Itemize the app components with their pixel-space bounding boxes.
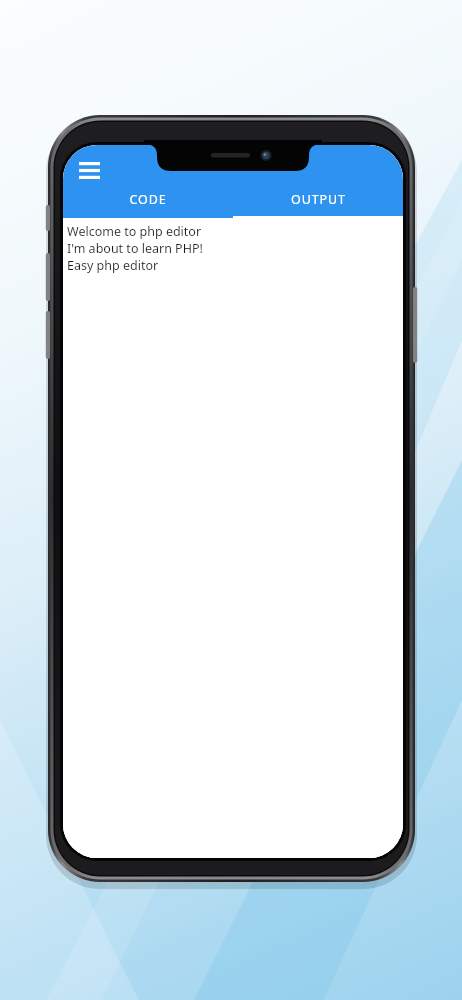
staticText: Welcome to php editor — [67, 223, 202, 240]
staticText: CODE — [129, 191, 167, 208]
button[interactable]: Open navigation menu — [72, 153, 106, 187]
button[interactable]: OUTPUT — [233, 188, 403, 218]
staticText: Easy php editor — [67, 257, 159, 274]
button[interactable]: CODE — [63, 188, 233, 218]
staticText: I'm about to learn PHP! — [67, 240, 203, 257]
staticText: OUTPUT — [291, 191, 346, 208]
